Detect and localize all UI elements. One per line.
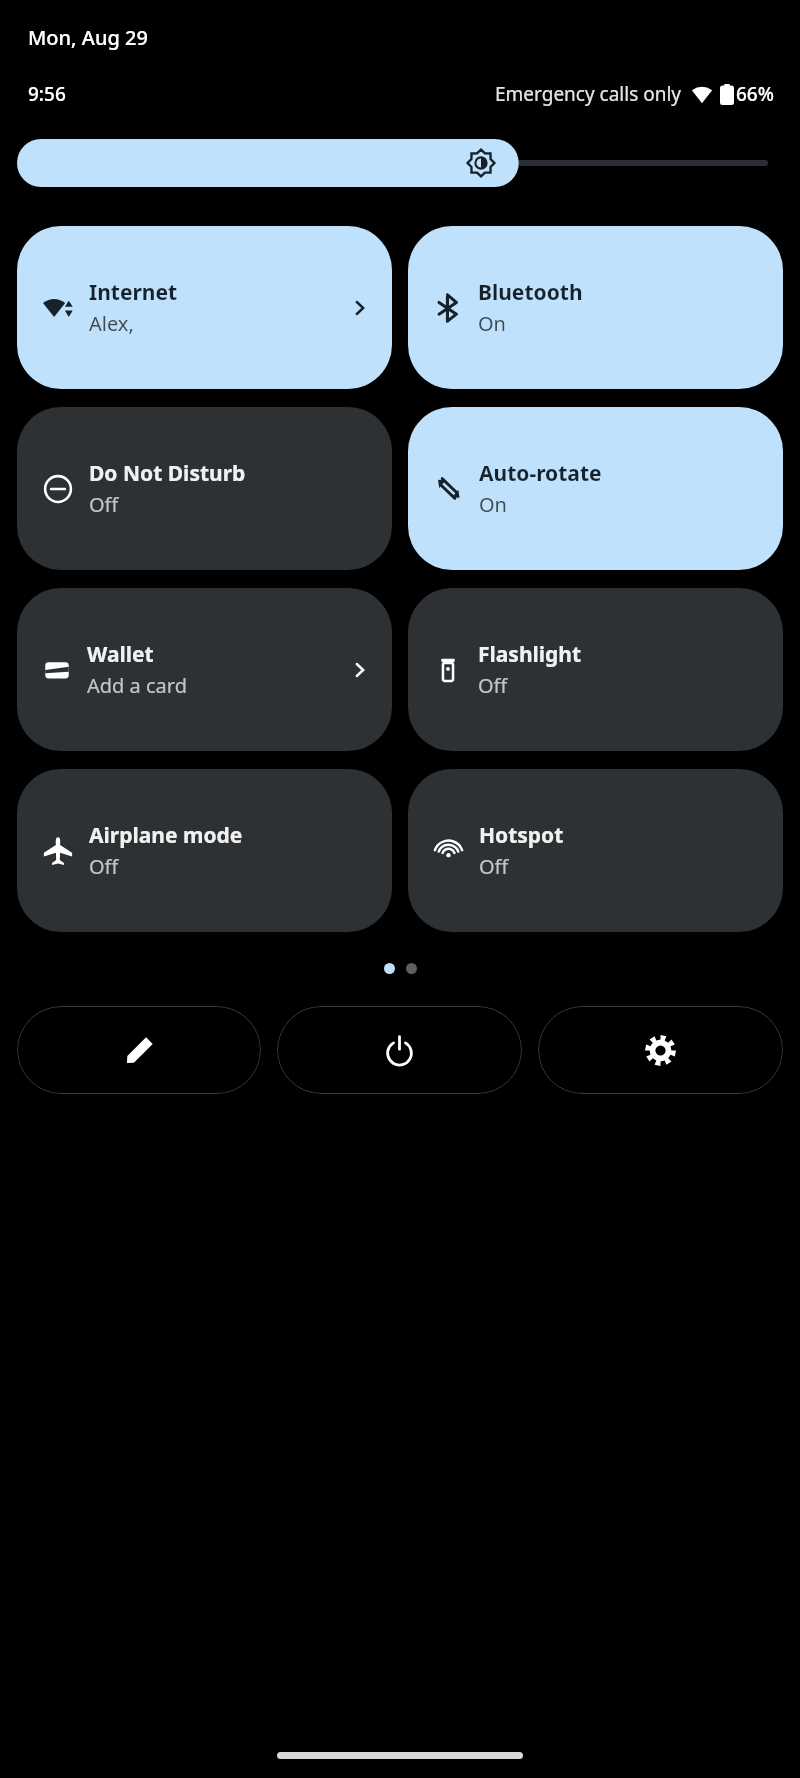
button[interactable]: Internet: [17, 226, 392, 389]
button[interactable]: Auto-rotate: [408, 407, 783, 570]
staticText: Internet: [89, 278, 178, 307]
staticText: On: [479, 491, 507, 518]
staticText: 66%: [736, 81, 774, 107]
staticText: Mon, Aug 29: [28, 24, 148, 51]
staticText: On: [478, 310, 506, 337]
button[interactable]: [17, 139, 783, 187]
button[interactable]: Do Not Disturb: [17, 407, 392, 570]
staticText: Do Not Disturb: [89, 459, 246, 488]
staticText: Hotspot: [479, 821, 564, 850]
staticText: Add a card: [87, 672, 187, 699]
staticText: Off: [479, 853, 509, 880]
staticText: Off: [89, 491, 119, 518]
button[interactable]: Flashlight: [408, 588, 783, 751]
button[interactable]: Settings: [538, 1006, 783, 1094]
staticText: Bluetooth: [478, 278, 583, 307]
staticText: Alex,: [89, 310, 134, 337]
staticText: Wallet: [87, 640, 154, 669]
button[interactable]: Hotspot: [408, 769, 783, 932]
staticText: Off: [478, 672, 508, 699]
button[interactable]: Airplane mode: [17, 769, 392, 932]
button[interactable]: Edit tiles: [17, 1006, 261, 1094]
button[interactable]: Wallet: [17, 588, 392, 751]
staticText: Auto-rotate: [479, 459, 602, 488]
button[interactable]: Bluetooth: [408, 226, 783, 389]
staticText: Emergency calls only: [495, 81, 682, 107]
staticText: Flashlight: [478, 640, 582, 669]
staticText: 9:56: [28, 81, 66, 107]
staticText: Off: [89, 853, 119, 880]
staticText: Airplane mode: [89, 821, 243, 850]
button[interactable]: Power: [277, 1006, 522, 1094]
